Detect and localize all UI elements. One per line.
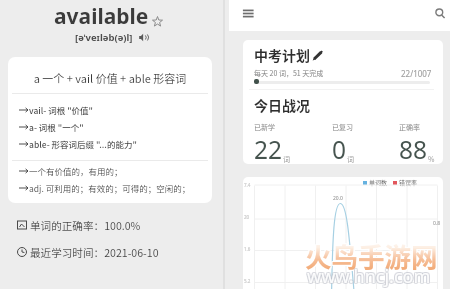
staticText: www.hncj.com <box>308 264 432 289</box>
staticText: 0 <box>332 133 347 164</box>
staticText: 错误率 <box>399 178 418 187</box>
staticText: www.hncj.com <box>307 264 431 289</box>
staticText: 火鸟手游网 <box>305 235 438 273</box>
button[interactable]: 最近学习时间：2021-06-10 <box>17 245 159 259</box>
staticText: 火鸟手游网 <box>304 237 437 275</box>
staticText: www.hncj.com <box>307 263 431 288</box>
button[interactable]: 单词的正确率：100.0% <box>17 218 141 232</box>
staticText: www.hncj.com <box>308 265 432 289</box>
staticText: 中考计划 <box>254 45 310 65</box>
staticText: 22 <box>254 133 283 164</box>
staticText: adj. 可利用的；有效的；可得的；空闲的； <box>29 182 191 194</box>
staticText: 7.4 <box>244 182 251 188</box>
staticText: a- 词根 "一个" <box>29 121 84 133</box>
staticText: 火鸟手游网 <box>306 236 439 274</box>
button[interactable]: Edit plan <box>312 50 323 61</box>
staticText: 火鸟手游网 <box>305 237 438 275</box>
button[interactable]: Menu <box>237 5 257 25</box>
staticText: 已复习 <box>332 122 353 132</box>
staticText: 词 <box>283 154 290 164</box>
staticText: 今日战况 <box>254 95 310 115</box>
staticText: available <box>54 2 149 31</box>
staticText: % <box>428 154 435 164</box>
staticText: www.hncj.com <box>308 263 432 288</box>
staticText: 20 <box>244 214 250 220</box>
staticText: [əˈveɪləb(ə)l] <box>75 31 133 44</box>
staticText: 20.0 <box>333 195 343 202</box>
staticText: 已新学 <box>254 122 275 132</box>
staticText: www.hncj.com <box>306 265 430 289</box>
staticText: www.hncj.com <box>307 265 431 289</box>
staticText: 单词数 <box>369 178 388 187</box>
staticText: 22/1007 <box>401 68 432 79</box>
button[interactable]: Search <box>428 3 450 25</box>
button[interactable]: Play pronunciation <box>139 33 148 42</box>
staticText: 词 <box>347 154 354 164</box>
staticText: 一个有价值的，有用的； <box>29 165 123 177</box>
staticText: 最近学习时间：2021-06-10 <box>30 245 159 259</box>
staticText: www.hncj.com <box>306 264 430 289</box>
staticText: 正确率 <box>399 122 420 132</box>
staticText: 火鸟手游网 <box>304 235 437 273</box>
staticText: vail- 词根 "价值" <box>29 104 93 116</box>
staticText: 每天 20 词，51 天完成 <box>254 68 324 78</box>
staticText: 火鸟手游网 <box>306 237 439 275</box>
staticText: 0.8 <box>433 220 441 227</box>
button[interactable]: Favourite <box>152 16 163 27</box>
staticText: 火鸟手游网 <box>305 236 438 274</box>
staticText: 火鸟手游网 <box>304 236 437 274</box>
staticText: able- 形容词后缀 "...的能力" <box>29 138 137 150</box>
staticText: 88 <box>399 133 428 164</box>
staticText: 火鸟手游网 <box>306 235 439 273</box>
staticText: www.hncj.com <box>306 263 430 288</box>
staticText: a 一个 + vail 价值 + able 形容词 <box>8 70 212 86</box>
staticText: 1.6 <box>244 246 251 252</box>
staticText: 单词的正确率：100.0% <box>30 218 141 232</box>
staticText: 5.2 <box>244 278 251 284</box>
